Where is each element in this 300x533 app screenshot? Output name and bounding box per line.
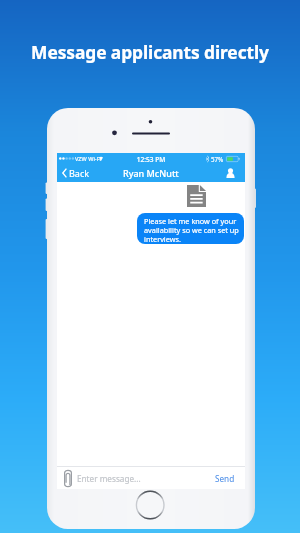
button[interactable]: Attach file [57, 468, 74, 489]
staticText: 12:53 PM [57, 155, 245, 164]
staticText: Please let me know of your availability … [144, 216, 239, 244]
button[interactable]: Back [57, 164, 96, 182]
staticText: Enter message... [77, 473, 205, 484]
button[interactable]: Contact profile [221, 166, 245, 180]
staticText: VZW Wi-Fi [75, 155, 102, 163]
button[interactable]: Attachment [187, 185, 206, 207]
staticText: Back [69, 167, 90, 179]
staticText: 57% [211, 155, 224, 163]
staticText: Ryan McNutt [123, 167, 179, 179]
staticText: Message applicants directly [0, 40, 300, 64]
button[interactable]: Send [205, 470, 245, 487]
button[interactable]: Please let me know of your availability … [137, 213, 244, 244]
staticText: Send [215, 473, 235, 484]
